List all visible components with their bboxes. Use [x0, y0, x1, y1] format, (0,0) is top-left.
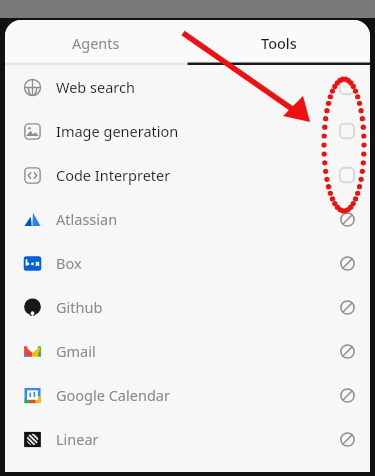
- staticText: Image generation: [56, 121, 179, 141]
- staticText: Box: [56, 253, 82, 273]
- button[interactable]: Code Interpreter: [5, 153, 370, 197]
- button[interactable]: Gmail unavailable: [332, 336, 362, 366]
- staticText: Gmail: [56, 341, 96, 361]
- button[interactable]: Toggle Web search: [332, 72, 362, 102]
- staticText: Tools: [261, 33, 297, 53]
- button[interactable]: Web search: [5, 65, 370, 109]
- button[interactable]: Github: [5, 285, 370, 329]
- staticText: Agents: [72, 33, 120, 53]
- button[interactable]: Agents: [5, 20, 187, 65]
- staticText: Google Calendar: [56, 385, 170, 405]
- staticText: Github: [56, 297, 103, 317]
- button[interactable]: Linear: [5, 417, 370, 461]
- staticText: Code Interpreter: [56, 165, 171, 185]
- button[interactable]: Gmail: [5, 329, 370, 373]
- staticText: Linear: [56, 429, 99, 449]
- button[interactable]: Google Calendar: [5, 373, 370, 417]
- button[interactable]: Linear unavailable: [332, 424, 362, 454]
- button[interactable]: Google Calendar unavailable: [332, 380, 362, 410]
- button[interactable]: Image generation: [5, 109, 370, 153]
- staticText: Atlassian: [56, 209, 118, 229]
- button[interactable]: Box unavailable: [332, 248, 362, 278]
- button[interactable]: Toggle Code Interpreter: [332, 160, 362, 190]
- button[interactable]: Github unavailable: [332, 292, 362, 322]
- button[interactable]: Box: [5, 241, 370, 285]
- staticText: Web search: [56, 77, 135, 97]
- button[interactable]: Toggle Image generation: [332, 116, 362, 146]
- button[interactable]: Tools: [187, 20, 370, 65]
- button[interactable]: Atlassian: [5, 197, 370, 241]
- button[interactable]: Atlassian unavailable: [332, 204, 362, 234]
